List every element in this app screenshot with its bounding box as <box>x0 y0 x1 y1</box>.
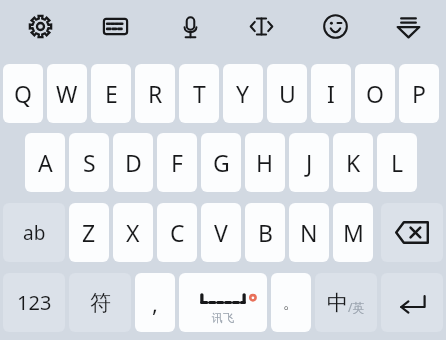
staticText: L <box>391 147 404 178</box>
button[interactable]: A <box>25 133 65 192</box>
button[interactable]: H <box>245 133 285 192</box>
button[interactable]: Settings <box>16 2 64 50</box>
button[interactable]: Move cursor <box>237 2 285 50</box>
button[interactable]: M <box>333 203 373 262</box>
staticText: 123 <box>17 289 52 316</box>
staticText: 符 <box>90 290 111 316</box>
staticText: 。 <box>283 293 299 313</box>
button[interactable]: B <box>245 203 285 262</box>
button[interactable]: T <box>179 64 219 123</box>
button[interactable]: 123 <box>3 273 65 332</box>
button[interactable]: C <box>157 203 197 262</box>
staticText: , <box>152 288 158 318</box>
staticText: H <box>256 147 274 178</box>
button[interactable]: Enter <box>381 273 443 332</box>
staticText: W <box>56 78 78 109</box>
staticText: E <box>105 78 118 109</box>
button[interactable]: L <box>377 133 417 192</box>
button[interactable]: Y <box>223 64 263 123</box>
button[interactable]: R <box>135 64 175 123</box>
button[interactable]: E <box>91 64 131 123</box>
button[interactable]: Z <box>69 203 109 262</box>
staticText: J <box>306 147 313 178</box>
staticText: ab <box>23 220 46 246</box>
button[interactable]: U <box>267 64 307 123</box>
button[interactable]: Q <box>3 64 43 123</box>
button[interactable]: O <box>355 64 395 123</box>
button[interactable]: 符 <box>69 273 131 332</box>
staticText: Q <box>14 78 32 109</box>
button[interactable]: Backspace <box>381 203 443 262</box>
button[interactable]: X <box>113 203 153 262</box>
button[interactable]: N <box>289 203 329 262</box>
staticText: D <box>125 147 142 178</box>
button[interactable]: Hide keyboard <box>384 2 432 50</box>
button[interactable]: W <box>47 64 87 123</box>
button[interactable]: F <box>157 133 197 192</box>
staticText: M <box>343 217 364 248</box>
staticText: Z <box>82 217 96 248</box>
button[interactable]: V <box>201 203 241 262</box>
button[interactable]: J <box>289 133 329 192</box>
button[interactable]: G <box>201 133 241 192</box>
staticText: 中 <box>327 290 348 316</box>
staticText: P <box>412 78 426 109</box>
button[interactable]: P <box>399 64 439 123</box>
staticText: U <box>279 78 296 109</box>
button[interactable]: S <box>69 133 109 192</box>
button[interactable]: Space <box>179 273 267 332</box>
button[interactable]: Chinese English toggle <box>315 273 377 332</box>
staticText: A <box>38 147 53 178</box>
staticText: S <box>83 147 96 178</box>
button[interactable]: Voice input <box>166 2 214 50</box>
button[interactable]: 。 <box>271 273 311 332</box>
staticText: Y <box>236 78 250 109</box>
button[interactable]: D <box>113 133 153 192</box>
button[interactable]: ab <box>3 203 65 262</box>
staticText: C <box>170 217 185 248</box>
button[interactable]: Keyboard layout <box>91 2 139 50</box>
staticText: B <box>258 217 273 248</box>
staticText: K <box>346 147 361 178</box>
staticText: 讯飞 <box>212 311 234 325</box>
staticText: O <box>366 78 384 109</box>
staticText: V <box>214 217 228 248</box>
staticText: I <box>327 78 335 109</box>
button[interactable]: K <box>333 133 373 192</box>
staticText: T <box>193 78 206 109</box>
staticText: X <box>126 217 140 248</box>
staticText: N <box>300 217 318 248</box>
button[interactable]: , <box>135 273 175 332</box>
staticText: F <box>171 147 183 178</box>
button[interactable]: I <box>311 64 351 123</box>
staticText: /英 <box>348 299 365 315</box>
staticText: G <box>213 147 230 178</box>
staticText: R <box>148 78 163 109</box>
button[interactable]: Emoji <box>311 2 359 50</box>
